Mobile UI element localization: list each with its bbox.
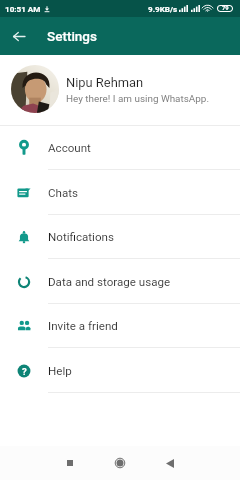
staticText: Nipu Rehman <box>66 75 144 90</box>
button[interactable]: Account <box>0 126 240 170</box>
button[interactable]: Invite a friend <box>0 304 240 348</box>
staticText: Settings <box>47 28 97 44</box>
button[interactable]: Home <box>103 446 137 480</box>
staticText: Notifications <box>48 230 114 244</box>
staticText: Hey there! I am using WhatsApp. <box>66 93 209 105</box>
staticText: Account <box>48 141 91 155</box>
button[interactable]: Chats <box>0 170 240 215</box>
staticText: 79 <box>222 5 229 12</box>
staticText: Help <box>48 364 72 378</box>
button[interactable]: Back <box>0 17 38 55</box>
staticText: Data and storage usage <box>48 275 171 289</box>
button[interactable]: Recent apps <box>53 446 87 480</box>
button[interactable]: Data and storage usage <box>0 259 240 304</box>
staticText: Chats <box>48 186 79 200</box>
staticText: Invite a friend <box>48 319 118 333</box>
button[interactable]: Notifications <box>0 215 240 259</box>
button[interactable]: Back <box>153 446 187 480</box>
staticText: ? <box>22 366 27 377</box>
button[interactable]: ? <box>0 348 240 393</box>
staticText: 10:51 AM <box>5 4 41 13</box>
staticText: 9.9KB/s <box>148 4 178 13</box>
button[interactable]: Nipu Rehman <box>0 55 240 125</box>
